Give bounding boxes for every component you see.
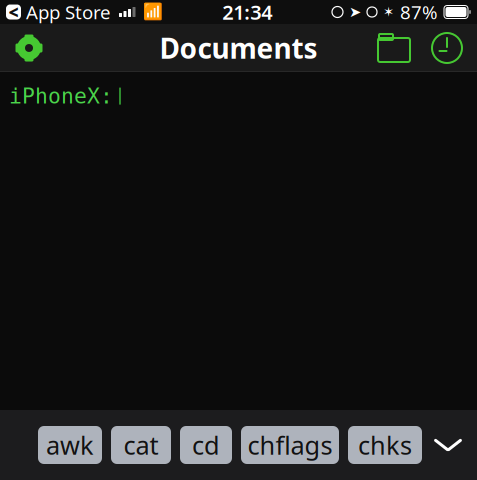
button[interactable]: chflags xyxy=(241,426,339,464)
button[interactable]: chks xyxy=(348,426,422,464)
button[interactable]: cd xyxy=(180,426,232,464)
button[interactable]: Settings xyxy=(4,24,54,72)
staticText: ✶ xyxy=(383,4,394,19)
staticText: cd xyxy=(192,428,220,462)
staticText: 21:34 xyxy=(222,0,272,25)
staticText: chks xyxy=(358,428,412,462)
staticText: chflags xyxy=(247,428,332,462)
button[interactable]: cat xyxy=(111,426,171,464)
staticText: 87% xyxy=(400,0,438,24)
button[interactable]: History xyxy=(421,24,473,72)
staticText: cat xyxy=(123,428,158,462)
staticText: awk xyxy=(46,428,94,462)
staticText: ➤ xyxy=(349,4,361,20)
staticText: Documents xyxy=(159,29,317,67)
staticText: App Store xyxy=(26,0,111,24)
button[interactable]: awk xyxy=(38,426,102,464)
button[interactable]: Files xyxy=(367,24,421,72)
staticText: 📶 xyxy=(142,3,162,21)
staticText: < xyxy=(8,0,18,23)
staticText: iPhoneX: xyxy=(9,84,113,108)
button[interactable]: Hide keyboard accessory xyxy=(431,434,465,456)
